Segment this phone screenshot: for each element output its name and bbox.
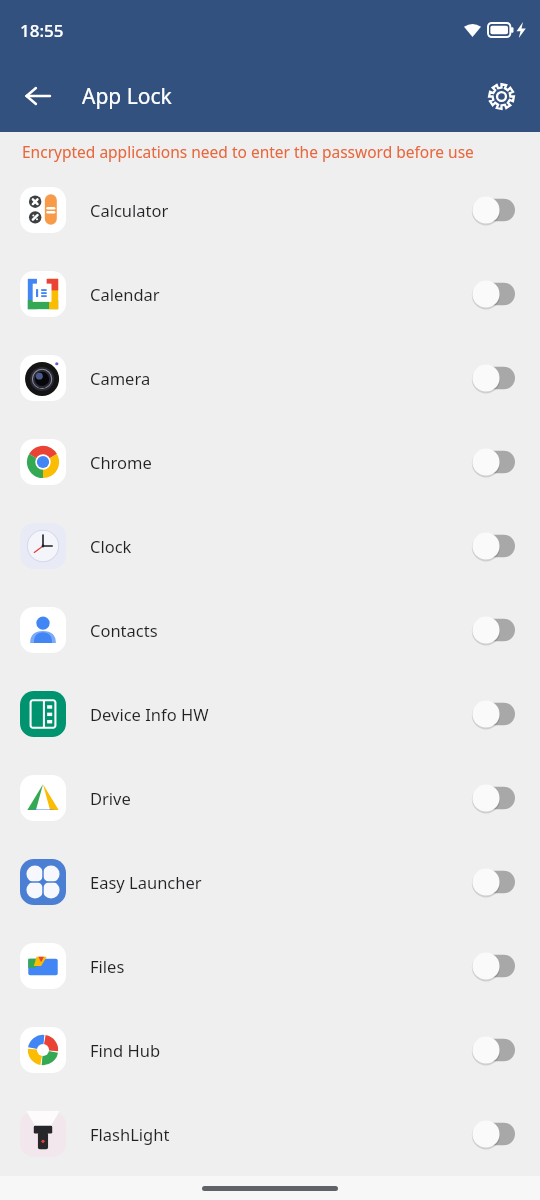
button[interactable]: Drive: [0, 756, 540, 840]
button[interactable]: Toggle lock: [471, 277, 521, 311]
staticText: 18:55: [20, 19, 64, 42]
staticText: Camera: [90, 367, 471, 389]
button[interactable]: Toggle lock: [471, 865, 521, 899]
button[interactable]: Toggle lock: [471, 529, 521, 563]
staticText: Files: [90, 955, 471, 977]
button[interactable]: Toggle lock: [471, 781, 521, 815]
staticText: Clock: [90, 535, 471, 557]
staticText: Contacts: [90, 619, 471, 641]
button[interactable]: Find Hub: [0, 1008, 540, 1092]
staticText: FlashLight: [90, 1123, 471, 1145]
staticText: Device Info HW: [90, 703, 471, 725]
button[interactable]: Chrome: [0, 420, 540, 504]
button[interactable]: Calculator: [0, 168, 540, 252]
button[interactable]: Toggle lock: [471, 445, 521, 479]
button[interactable]: Settings: [475, 70, 527, 122]
button[interactable]: Contacts: [0, 588, 540, 672]
button[interactable]: Toggle lock: [471, 613, 521, 647]
button[interactable]: Calendar: [0, 252, 540, 336]
button[interactable]: Toggle lock: [471, 1033, 521, 1067]
button[interactable]: Toggle lock: [471, 949, 521, 983]
button[interactable]: Files: [0, 924, 540, 1008]
staticText: Easy Launcher: [90, 871, 471, 893]
button[interactable]: Easy Launcher: [0, 840, 540, 924]
button[interactable]: Clock: [0, 504, 540, 588]
staticText: Encrypted applications need to enter the…: [22, 141, 522, 162]
staticText: Find Hub: [90, 1039, 471, 1061]
button[interactable]: Toggle lock: [471, 1117, 521, 1151]
staticText: Drive: [90, 787, 471, 809]
button[interactable]: Toggle lock: [471, 697, 521, 731]
button[interactable]: Back: [10, 68, 66, 124]
button[interactable]: Camera: [0, 336, 540, 420]
staticText: Calendar: [90, 283, 471, 305]
button[interactable]: Toggle lock: [471, 193, 521, 227]
staticText: App Lock: [82, 82, 172, 111]
button[interactable]: Device Info HW: [0, 672, 540, 756]
button[interactable]: Toggle lock: [471, 361, 521, 395]
button[interactable]: FlashLight: [0, 1092, 540, 1176]
staticText: Calculator: [90, 199, 471, 221]
staticText: Chrome: [90, 451, 471, 473]
